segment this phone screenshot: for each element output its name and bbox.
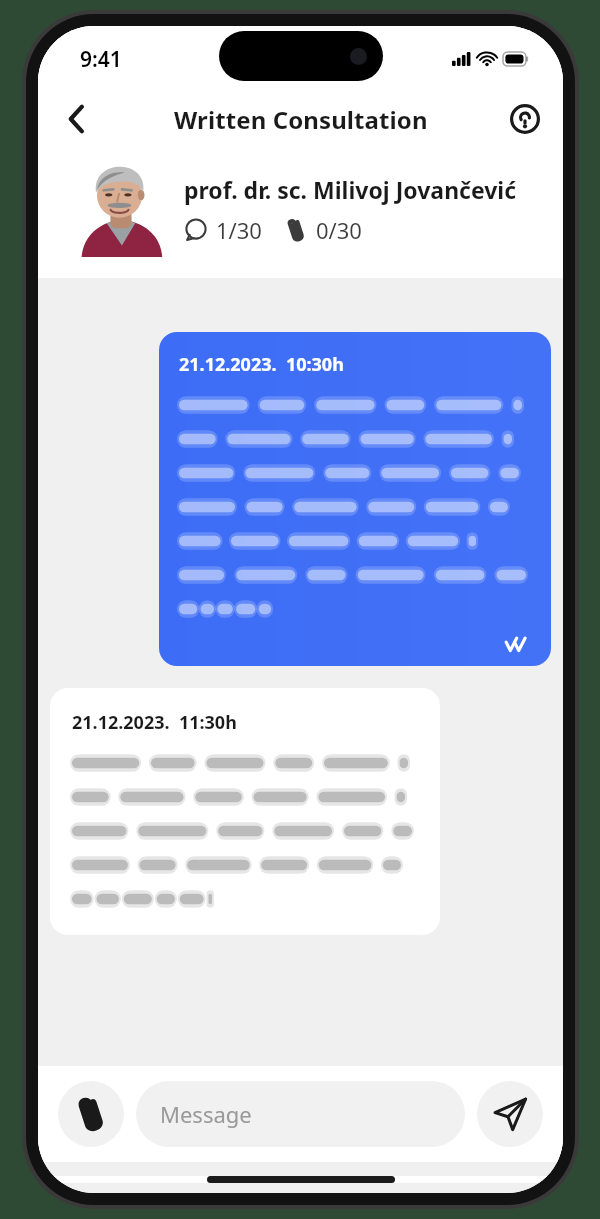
staticText: Written Consultation — [174, 103, 428, 136]
staticText: 9:41 — [80, 45, 122, 74]
button[interactable]: Send — [477, 1081, 543, 1147]
button[interactable]: 21.12.2023. 11:30h — [50, 688, 440, 935]
staticText: 0/30 — [316, 215, 362, 245]
staticText: prof. dr. sc. Milivoj Jovančević — [184, 174, 517, 205]
button[interactable]: Attach file — [58, 1081, 124, 1147]
button[interactable]: Message — [136, 1081, 465, 1147]
staticText: Message — [160, 1099, 252, 1129]
button[interactable]: Help — [501, 95, 549, 143]
button[interactable]: Back — [50, 93, 102, 145]
button[interactable]: prof. dr. sc. Milivoj Jovančević — [38, 150, 563, 268]
button[interactable]: 21.12.2023. 10:30h — [159, 332, 551, 666]
staticText: 1/30 — [216, 215, 262, 245]
staticText: 21.12.2023. 11:30h — [72, 710, 237, 735]
staticText: 21.12.2023. 10:30h — [179, 352, 344, 377]
